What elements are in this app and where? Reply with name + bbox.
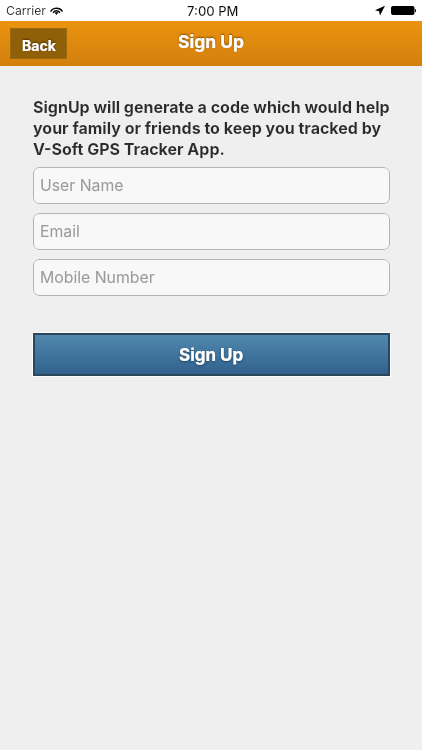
button[interactable]: Back bbox=[11, 29, 66, 58]
button[interactable]: Email bbox=[33, 213, 390, 250]
staticText: User Name bbox=[40, 176, 124, 195]
staticText: 7:00 PM bbox=[187, 3, 239, 19]
button[interactable]: User Name bbox=[33, 167, 390, 204]
staticText: Email bbox=[40, 222, 80, 241]
staticText: Sign Up bbox=[178, 31, 245, 52]
staticText: Back bbox=[22, 37, 56, 54]
button[interactable]: Sign Up bbox=[35, 335, 388, 374]
staticText: Mobile Number bbox=[40, 268, 155, 287]
button[interactable]: Mobile Number bbox=[33, 259, 390, 296]
staticText: Sign Up bbox=[179, 345, 244, 366]
staticText: SignUp will generate a code which would … bbox=[33, 97, 393, 159]
staticText: Carrier bbox=[6, 3, 46, 18]
